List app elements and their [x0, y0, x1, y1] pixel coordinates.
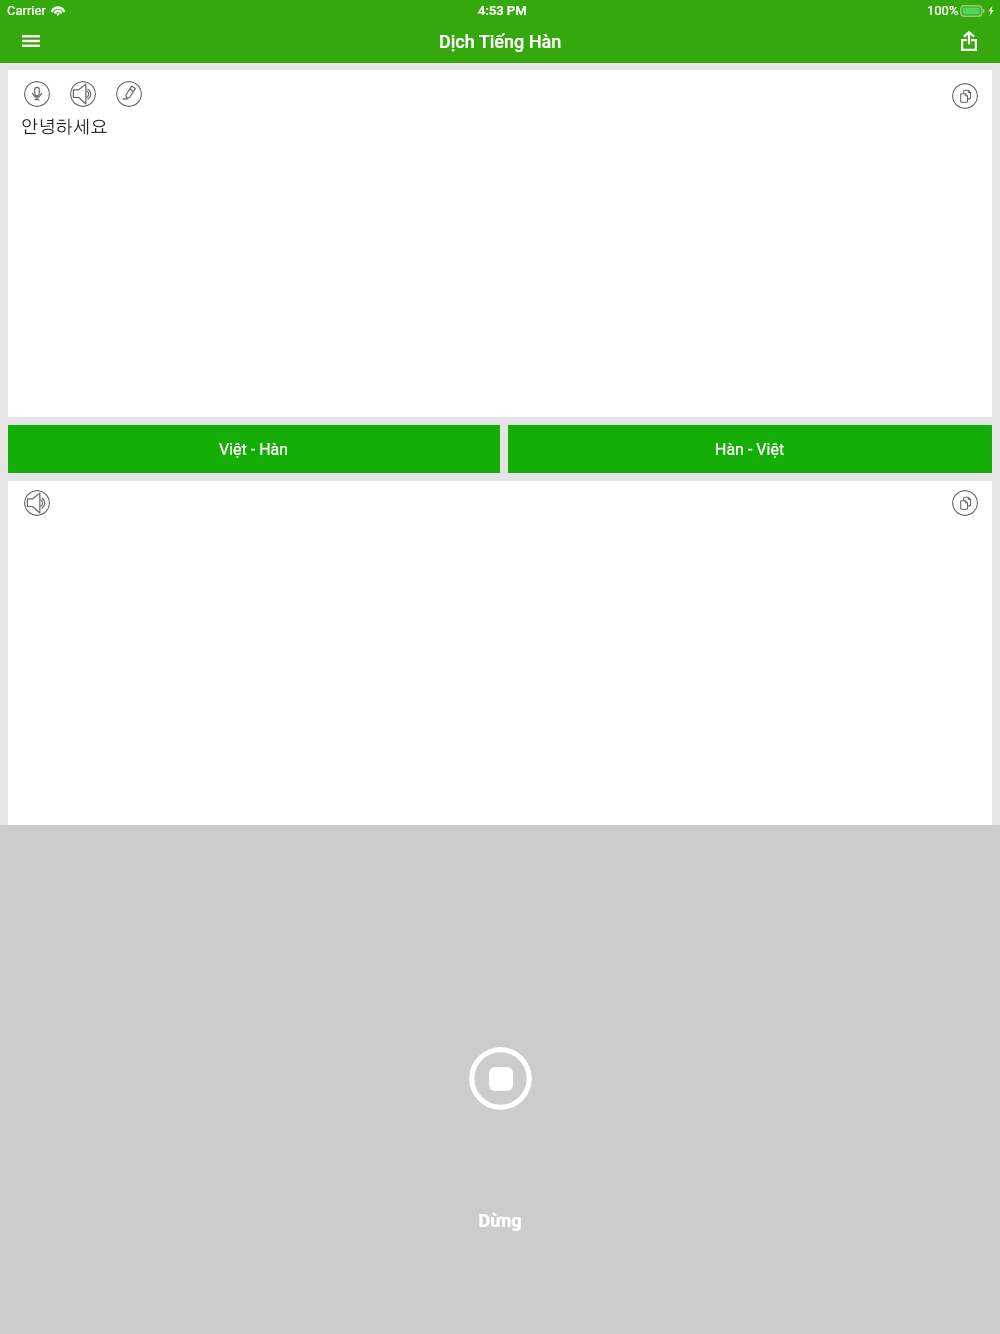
button[interactable]: Việt - Hàn	[8, 425, 500, 473]
staticText: 안녕하세요	[21, 119, 108, 137]
button[interactable]: Edit text	[116, 81, 142, 107]
staticText: Carrier	[7, 3, 46, 18]
button[interactable]: Speak translation	[24, 490, 50, 516]
button[interactable]: Hàn - Việt	[508, 425, 992, 473]
button[interactable]: Open navigation menu	[12, 22, 50, 60]
staticText: Hàn - Việt	[715, 440, 785, 459]
button[interactable]: Copy source text	[952, 83, 978, 109]
staticText: Việt - Hàn	[219, 440, 289, 459]
staticText: 4:53 PM	[478, 3, 527, 18]
button[interactable]: Speak source text	[70, 81, 96, 107]
button[interactable]: Stop recording	[469, 1047, 532, 1110]
staticText: Dịch Tiếng Hàn	[439, 31, 562, 52]
button[interactable]: Copy translation	[952, 490, 978, 516]
button[interactable]: Share	[950, 22, 988, 60]
staticText: 100%	[927, 3, 959, 18]
button[interactable]: Record voice	[24, 81, 50, 107]
staticText: Dừng	[478, 1210, 522, 1231]
